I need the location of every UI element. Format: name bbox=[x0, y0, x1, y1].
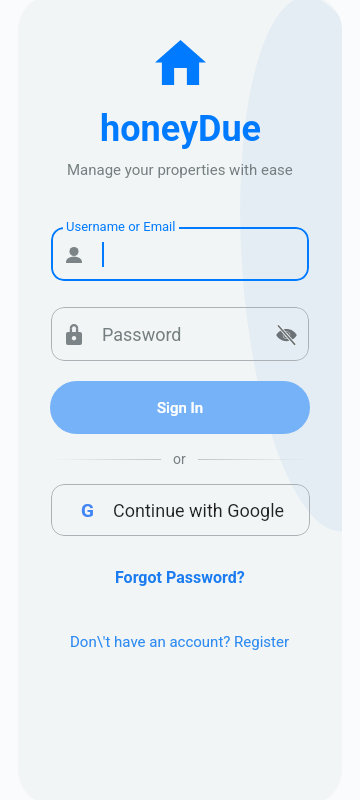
button[interactable]: Password bbox=[51, 307, 309, 361]
staticText: Forgot Password? bbox=[115, 568, 245, 587]
staticText: honeyDue bbox=[100, 108, 261, 150]
staticText: or bbox=[173, 451, 186, 467]
staticText: G bbox=[81, 499, 94, 521]
staticText: Password bbox=[102, 324, 182, 345]
button[interactable]: Show password bbox=[266, 314, 306, 354]
staticText: Sign In bbox=[157, 399, 204, 417]
button[interactable]: Don\'t have an account? Register bbox=[60, 629, 300, 655]
staticText: Manage your properties with ease bbox=[67, 161, 293, 179]
button[interactable]: Forgot Password? bbox=[105, 564, 255, 591]
staticText: Username or Email bbox=[66, 219, 176, 234]
staticText: Continue with Google bbox=[113, 500, 285, 521]
button[interactable]: Sign In bbox=[50, 381, 310, 434]
button[interactable] bbox=[51, 227, 309, 281]
staticText: Don\'t have an account? Register bbox=[70, 633, 290, 651]
button[interactable]: G bbox=[51, 484, 310, 536]
